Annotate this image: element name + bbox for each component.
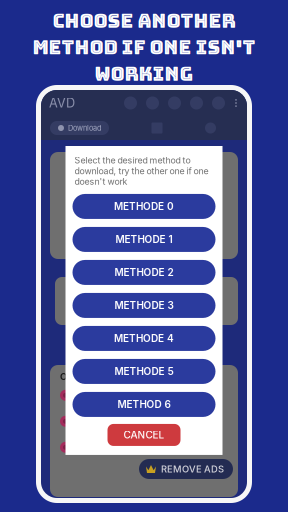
staticText: Download SocialFB: [79, 442, 157, 452]
staticText: METHODE 4: [114, 332, 174, 344]
staticText: METHODE 1: [115, 233, 172, 245]
staticText: METHODE 3: [114, 299, 173, 311]
staticText: METHODE 0: [114, 200, 174, 212]
staticText: METHODE 5: [114, 365, 173, 377]
staticText: Select the desired method to download, t…: [74, 155, 208, 187]
button[interactable]: METHODE 4: [72, 326, 215, 351]
staticText: METHODE 2: [114, 266, 173, 278]
staticText: WORKING: [94, 61, 193, 86]
button[interactable]: METHODE 2: [72, 260, 215, 285]
button[interactable]: METHODE 5: [72, 359, 215, 384]
staticText: Options: [60, 371, 95, 382]
button[interactable]: REMOVE ADS: [139, 459, 233, 479]
staticText: METHOD IF ONE ISN'T: [32, 34, 255, 60]
staticText: Download TikTok: [79, 416, 148, 426]
button[interactable]: METHODE 1: [72, 227, 215, 252]
staticText: Download: [68, 124, 101, 132]
button[interactable]: CANCEL: [107, 424, 180, 446]
staticText: AVD: [49, 95, 75, 111]
staticText: REMOVE ADS: [161, 463, 224, 475]
staticText: Download Instagram: [79, 390, 162, 400]
button[interactable]: METHODE 0: [72, 194, 215, 219]
staticText: CHOOSE ANOTHER: [52, 8, 235, 33]
staticText: CANCEL: [123, 429, 164, 441]
staticText: METHOD 6: [117, 398, 170, 410]
button[interactable]: METHODE 3: [72, 293, 215, 318]
button[interactable]: METHOD 6: [72, 392, 215, 417]
